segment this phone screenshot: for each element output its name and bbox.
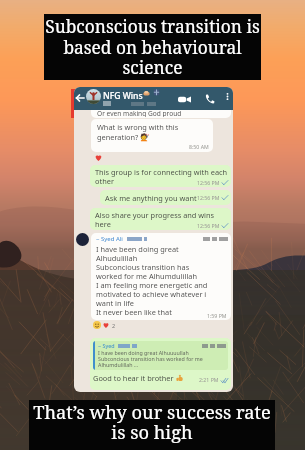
staticText: I have been doing great Alhuuuullah Subc…: [98, 349, 203, 368]
staticText: Also share your progress and wins here: [95, 210, 215, 229]
button[interactable]: Ask me anything you want: [100, 190, 231, 205]
button[interactable]: Also share your progress and wins here: [90, 208, 231, 230]
button[interactable]: Back: [75, 93, 85, 103]
staticText: Ask me anything you want: [105, 193, 197, 203]
staticText: NFG Wins: [103, 90, 143, 102]
staticText: 12:56 PM: [197, 194, 220, 201]
button[interactable]: More options: [224, 93, 231, 100]
button[interactable]: ~ Syed: [90, 338, 231, 390]
staticText: 2: [112, 322, 116, 329]
staticText: 12:56 PM: [197, 222, 220, 229]
button[interactable]: Voice call: [204, 93, 215, 104]
staticText: I have been doing great Alhudulillah Sub…: [96, 244, 208, 317]
staticText: 12:56 PM: [197, 179, 220, 186]
staticText: 8:50 AM: [189, 143, 209, 150]
staticText: Good to hear it brother: [93, 373, 174, 383]
button[interactable]: This group is for connecting with each o…: [90, 165, 231, 187]
staticText: ~ Syed: [98, 342, 115, 349]
staticText: ~ Syed Ali: [96, 235, 123, 243]
staticText: What is wrong with this generation? 💇: [97, 122, 179, 142]
button[interactable]: Video call: [178, 93, 191, 106]
staticText: Or even making God proud: [97, 110, 182, 117]
staticText: 1:59 PM: [207, 312, 227, 319]
staticText: This group is for connecting with each o…: [95, 167, 228, 186]
staticText: That’s why our success rate is so high: [30, 399, 274, 444]
staticText: Subconscious transition is based on beha…: [45, 15, 260, 79]
staticText: 2:21 PM: [199, 376, 219, 383]
